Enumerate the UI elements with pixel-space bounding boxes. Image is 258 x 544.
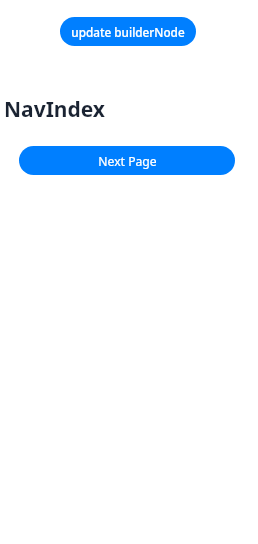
staticText: Next Page xyxy=(98,153,157,170)
button[interactable]: Next Page xyxy=(19,146,235,175)
staticText: update builderNode xyxy=(71,24,185,40)
staticText: NavIndex xyxy=(4,95,105,124)
button[interactable]: update builderNode xyxy=(60,17,196,46)
